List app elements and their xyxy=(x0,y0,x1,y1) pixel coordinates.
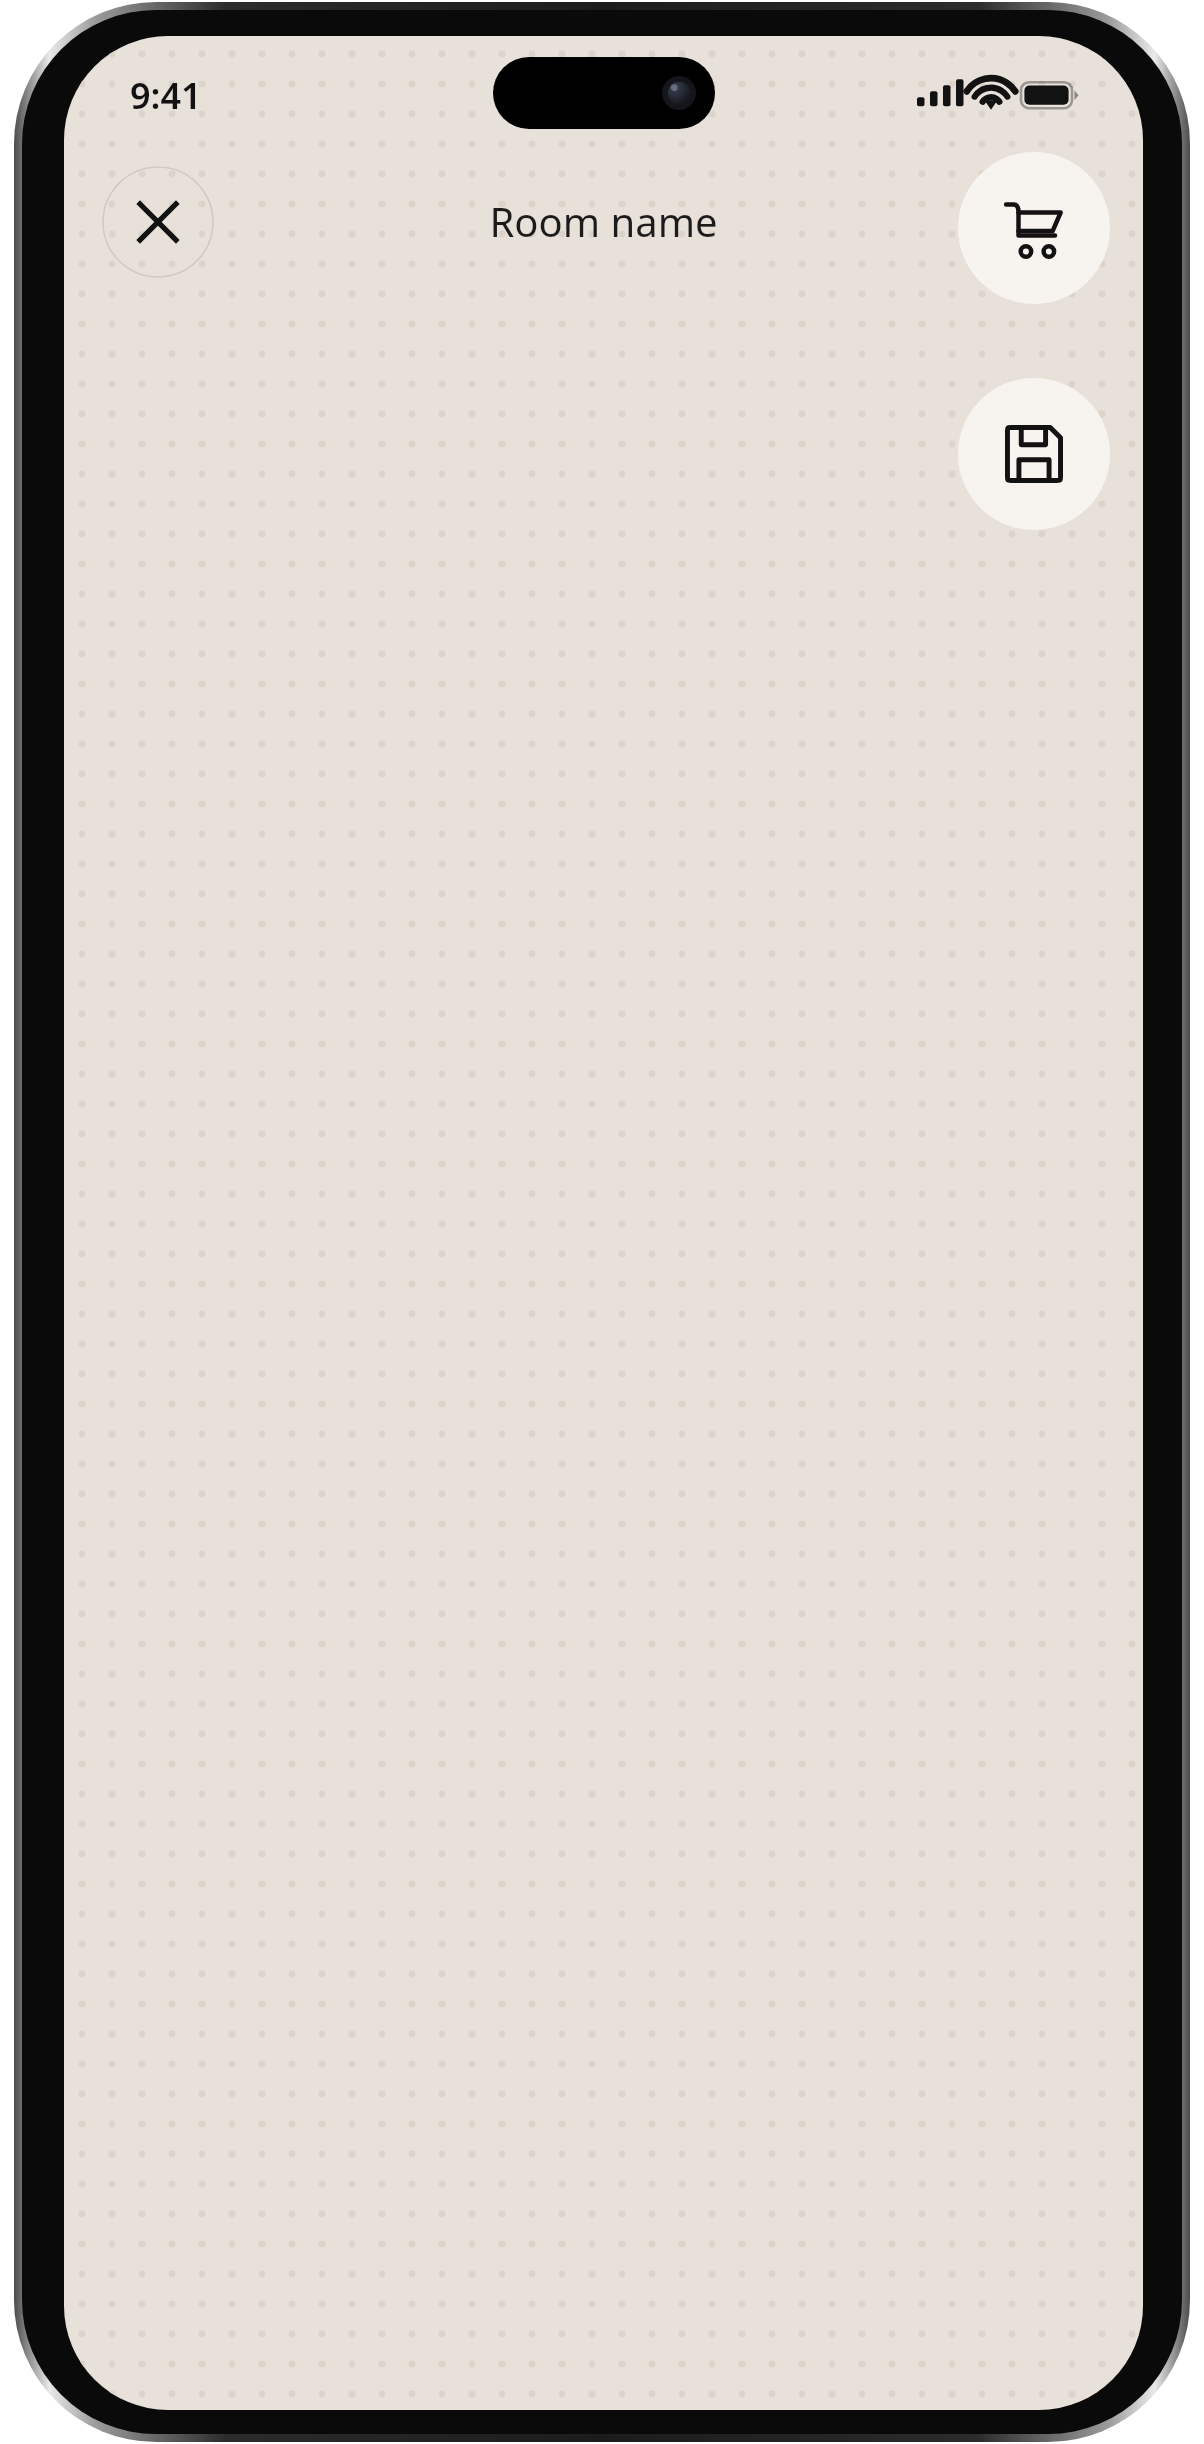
staticText: Room name xyxy=(489,194,718,248)
button[interactable]: Cart xyxy=(958,152,1110,304)
button[interactable]: Save xyxy=(958,378,1110,530)
button[interactable]: Close xyxy=(102,166,214,278)
staticText: 9:41 xyxy=(130,71,202,120)
